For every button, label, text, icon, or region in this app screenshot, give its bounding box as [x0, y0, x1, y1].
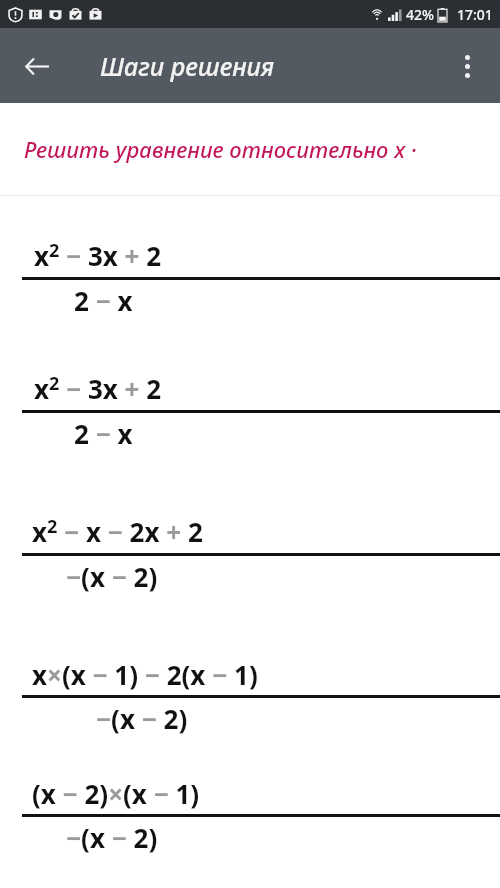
- staticText: −(x − 2): [66, 820, 158, 855]
- staticText: x×(x − 1) − 2(x − 1): [32, 657, 258, 692]
- staticText: −(x − 2): [96, 701, 188, 736]
- staticText: (x − 2)×(x − 1): [32, 776, 200, 811]
- button[interactable]: Back: [14, 43, 60, 89]
- staticText: Решить уравнение относительно x ·: [24, 134, 496, 164]
- staticText: x2 − x − 2x + 2: [32, 514, 203, 550]
- staticText: x2 − 3x + 2: [34, 238, 162, 274]
- button[interactable]: x2 − 3x + 2: [0, 339, 500, 482]
- button[interactable]: x2 − x − 2x + 2: [0, 482, 500, 625]
- staticText: −(x − 2): [66, 559, 158, 594]
- staticText: 17:01: [457, 5, 493, 24]
- staticText: 42%: [406, 5, 434, 24]
- button[interactable]: Решить уравнение относительно x ·: [0, 103, 500, 195]
- button[interactable]: More options: [444, 43, 490, 89]
- staticText: 2 − x: [74, 283, 133, 318]
- button[interactable]: (x − 2)×(x − 1): [0, 768, 500, 888]
- button[interactable]: x2 − 3x + 2: [0, 216, 500, 339]
- staticText: x2 − 3x + 2: [34, 371, 162, 407]
- staticText: Шаги решения: [100, 49, 275, 83]
- staticText: 2 − x: [74, 416, 133, 451]
- button[interactable]: x×(x − 1) − 2(x − 1): [0, 625, 500, 768]
